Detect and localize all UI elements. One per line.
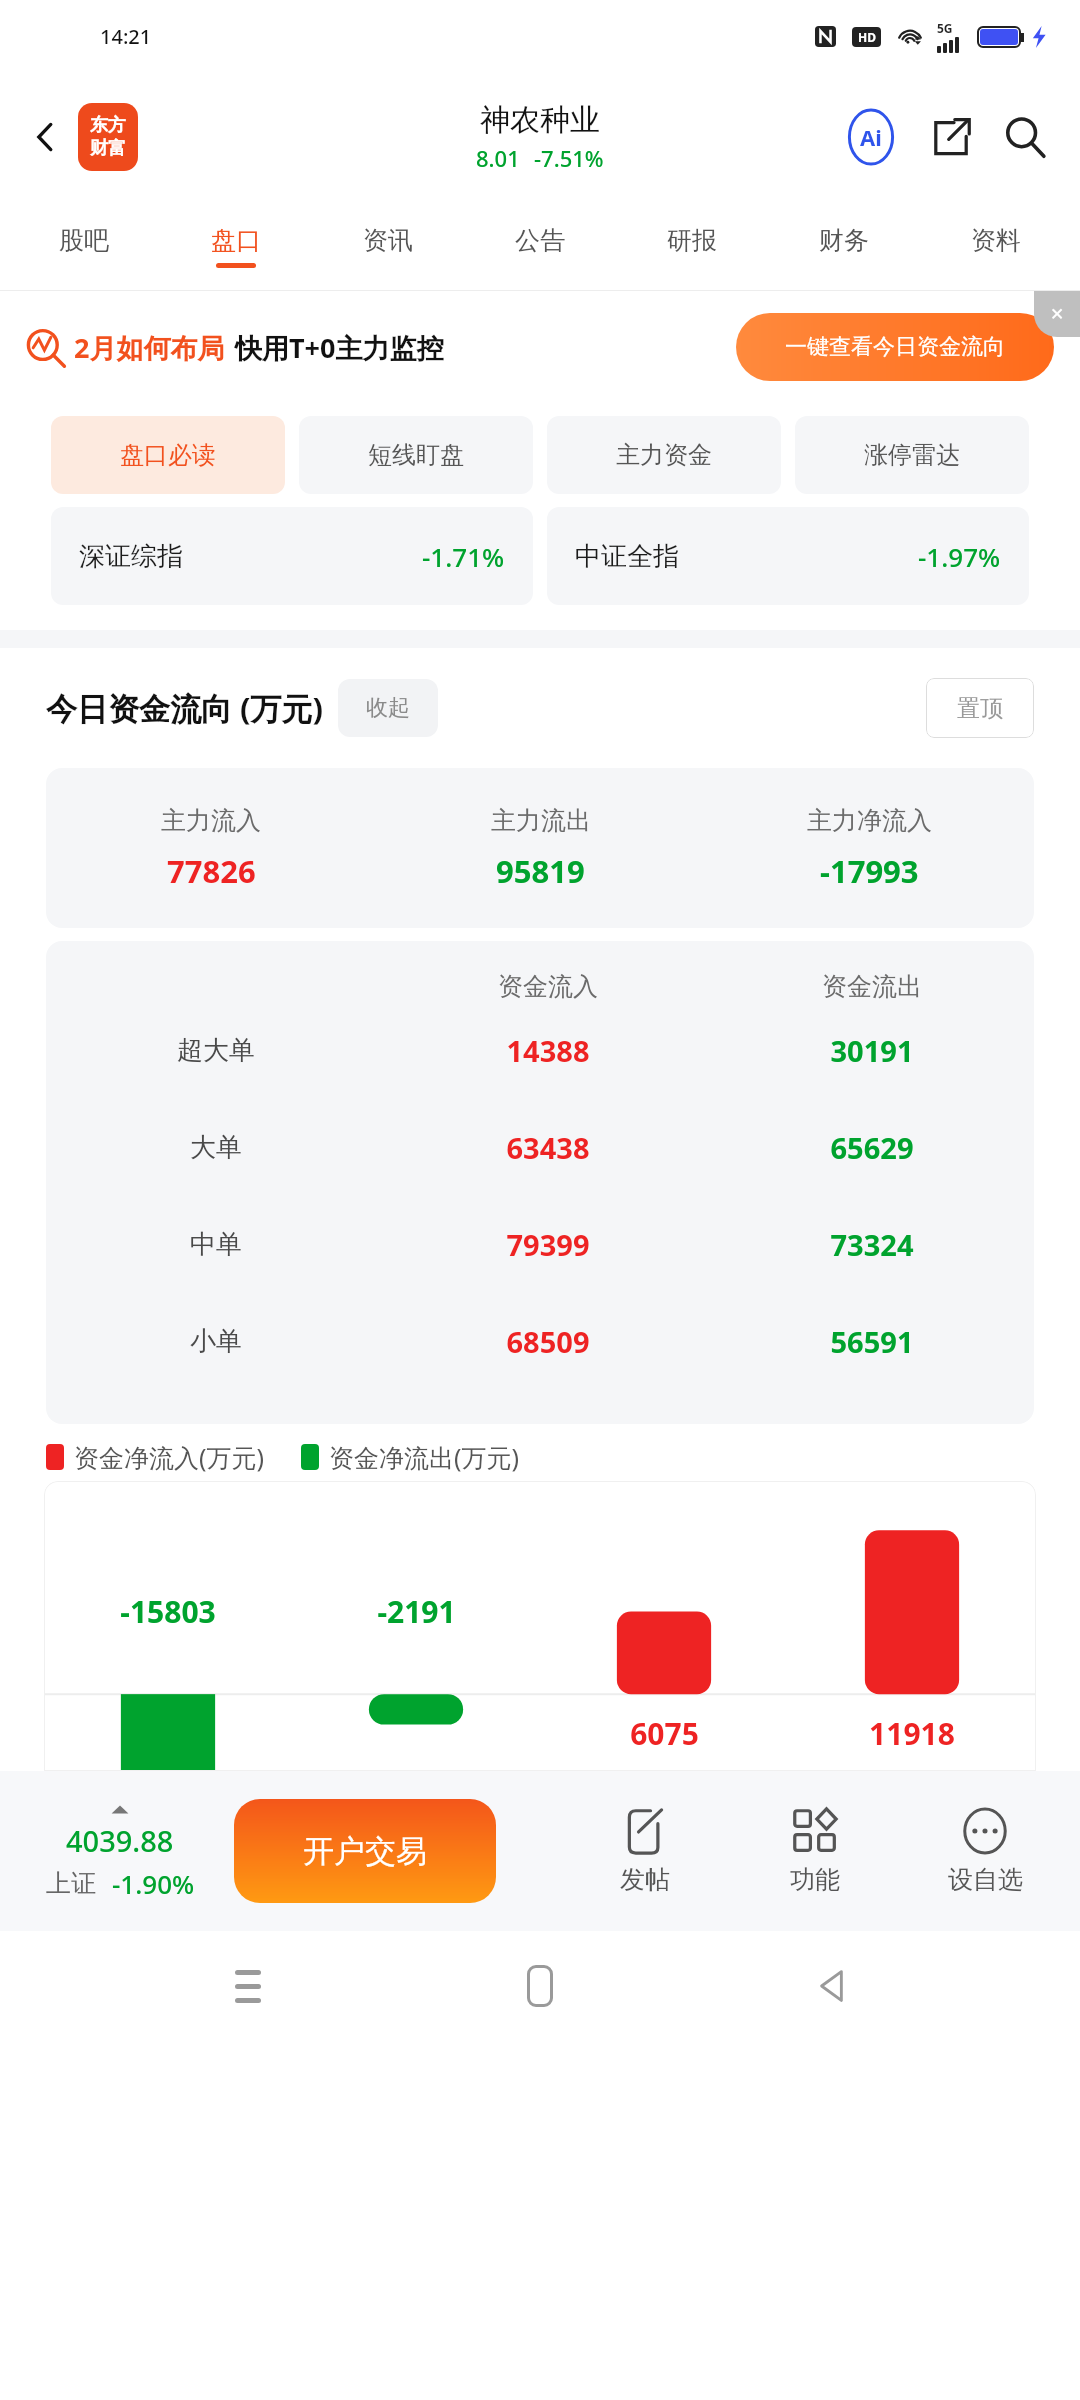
- staticText: -1.90%: [112, 1866, 195, 1901]
- button[interactable]: 功能: [750, 1808, 880, 1895]
- staticText: 主力流入: [161, 805, 261, 836]
- button[interactable]: 盘口必读: [51, 416, 285, 494]
- button[interactable]: 公告: [464, 202, 616, 290]
- staticText: -15803: [120, 1591, 216, 1632]
- button[interactable]: 盘口: [160, 202, 312, 290]
- staticText: 财务: [819, 225, 869, 256]
- staticText: 股吧: [59, 225, 109, 256]
- staticText: 小单: [190, 1325, 242, 1358]
- staticText: 63438: [386, 1128, 710, 1167]
- staticText: 今日资金流向 (万元): [46, 687, 324, 729]
- button[interactable]: 4039.88: [20, 1801, 220, 1901]
- staticText: 置顶: [957, 694, 1003, 723]
- staticText: 79399: [386, 1225, 710, 1264]
- button[interactable]: 主力流入: [46, 768, 1034, 928]
- staticText: 中证全指: [575, 540, 679, 573]
- staticText: 一键查看今日资金流向: [785, 333, 1005, 361]
- staticText: 8.01: [476, 143, 520, 173]
- button[interactable]: Back: [18, 109, 74, 165]
- staticText: 研报: [667, 225, 717, 256]
- staticText: 发帖: [620, 1864, 670, 1895]
- staticText: 资金净流入(万元): [74, 1440, 265, 1474]
- staticText: ✕: [1050, 304, 1065, 324]
- button[interactable]: Close ad: [1034, 291, 1080, 337]
- staticText: 超大单: [177, 1034, 255, 1067]
- button[interactable]: 研报: [616, 202, 768, 290]
- button[interactable]: Share: [922, 108, 980, 166]
- staticText: 财富: [90, 137, 126, 160]
- staticText: 68509: [386, 1322, 710, 1361]
- staticText: 盘口: [211, 225, 261, 256]
- button[interactable]: 中证全指: [547, 507, 1029, 605]
- button[interactable]: 大单: [46, 1099, 1034, 1196]
- button[interactable]: AI assistant: [840, 106, 902, 168]
- staticText: 30191: [710, 1031, 1034, 1070]
- staticText: 14388: [386, 1031, 710, 1070]
- staticText: 涨停雷达: [864, 440, 960, 470]
- staticText: 95819: [496, 850, 585, 892]
- staticText: 深证综指: [79, 540, 183, 573]
- staticText: 14:21: [100, 23, 152, 50]
- button[interactable]: 东方财富: [78, 103, 138, 171]
- staticText: 73324: [710, 1225, 1034, 1264]
- staticText: 资讯: [363, 225, 413, 256]
- staticText: 4039.88: [66, 1821, 174, 1860]
- button[interactable]: 开户交易: [234, 1799, 496, 1903]
- staticText: 中单: [190, 1228, 242, 1261]
- staticText: 5G: [937, 20, 953, 36]
- staticText: 65629: [710, 1128, 1034, 1167]
- staticText: 11918: [869, 1713, 955, 1754]
- staticText: 盘口必读: [120, 440, 216, 470]
- staticText: 2月如何布局: [74, 329, 225, 366]
- button[interactable]: 发帖: [580, 1808, 710, 1895]
- button[interactable]: 小单: [46, 1293, 1034, 1390]
- button[interactable]: 一键查看今日资金流向: [736, 313, 1054, 381]
- button[interactable]: 收起: [338, 679, 438, 737]
- staticText: 东方: [90, 114, 126, 137]
- staticText: -1.97%: [918, 539, 1001, 574]
- staticText: Ai: [860, 122, 882, 152]
- staticText: -2191: [377, 1591, 456, 1632]
- staticText: 快用T+0主力监控: [235, 329, 444, 366]
- button[interactable]: Home: [495, 1941, 585, 2031]
- button[interactable]: Search: [996, 108, 1054, 166]
- button[interactable]: 财务: [768, 202, 920, 290]
- staticText: 77826: [167, 850, 256, 892]
- staticText: -1.71%: [422, 539, 505, 574]
- staticText: 56591: [710, 1322, 1034, 1361]
- button[interactable]: Recents: [203, 1941, 293, 2031]
- staticText: -17993: [820, 850, 919, 892]
- button[interactable]: 股吧: [8, 202, 160, 290]
- staticText: 功能: [790, 1864, 840, 1895]
- button[interactable]: 深证综指: [51, 507, 533, 605]
- button[interactable]: 置顶: [926, 678, 1034, 738]
- staticText: 资金流入: [386, 971, 710, 1002]
- button[interactable]: 超大单: [46, 1002, 1034, 1099]
- staticText: 主力资金: [616, 440, 712, 470]
- button[interactable]: 中单: [46, 1196, 1034, 1293]
- button[interactable]: 短线盯盘: [299, 416, 533, 494]
- button[interactable]: 主力资金: [547, 416, 781, 494]
- staticText: 主力流出: [491, 805, 591, 836]
- staticText: 开户交易: [303, 1832, 427, 1871]
- staticText: 公告: [515, 225, 565, 256]
- staticText: 资金流出: [710, 971, 1034, 1002]
- button[interactable]: 设自选: [920, 1808, 1050, 1895]
- staticText: 上证: [46, 1868, 96, 1899]
- button[interactable]: 资讯: [312, 202, 464, 290]
- button[interactable]: Back: [788, 1941, 878, 2031]
- button[interactable]: 涨停雷达: [795, 416, 1029, 494]
- staticText: 短线盯盘: [368, 440, 464, 470]
- staticText: 收起: [366, 694, 410, 722]
- staticText: 大单: [190, 1131, 242, 1164]
- staticText: 6075: [630, 1713, 699, 1754]
- button[interactable]: 资料: [920, 202, 1072, 290]
- staticText: -7.51%: [534, 143, 604, 173]
- staticText: 资金净流出(万元): [329, 1440, 520, 1474]
- staticText: 神农种业: [480, 101, 600, 139]
- staticText: 设自选: [948, 1864, 1023, 1895]
- staticText: HD: [858, 29, 876, 45]
- staticText: 主力净流入: [807, 805, 932, 836]
- staticText: 资料: [971, 225, 1021, 256]
